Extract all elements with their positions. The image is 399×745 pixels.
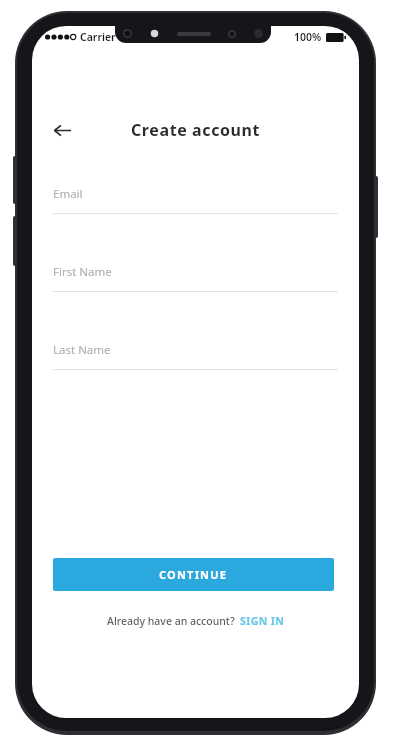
button[interactable]: First Name	[53, 264, 338, 292]
button[interactable]: Back	[42, 110, 82, 150]
staticText: 100%	[294, 30, 322, 44]
staticText: Last Name	[53, 342, 111, 358]
button[interactable]: CONTINUE	[53, 558, 334, 591]
staticText: Already have an account?	[107, 614, 235, 628]
button[interactable]: Email	[53, 186, 338, 214]
staticText: Create account	[131, 119, 261, 141]
staticText: SIGN IN	[240, 614, 285, 628]
staticText: CONTINUE	[159, 567, 228, 582]
staticText: Carrier	[80, 30, 116, 44]
staticText: Email	[53, 186, 83, 202]
button[interactable]: Last Name	[53, 342, 338, 370]
button[interactable]: SIGN IN	[240, 614, 285, 628]
staticText: First Name	[53, 264, 112, 280]
